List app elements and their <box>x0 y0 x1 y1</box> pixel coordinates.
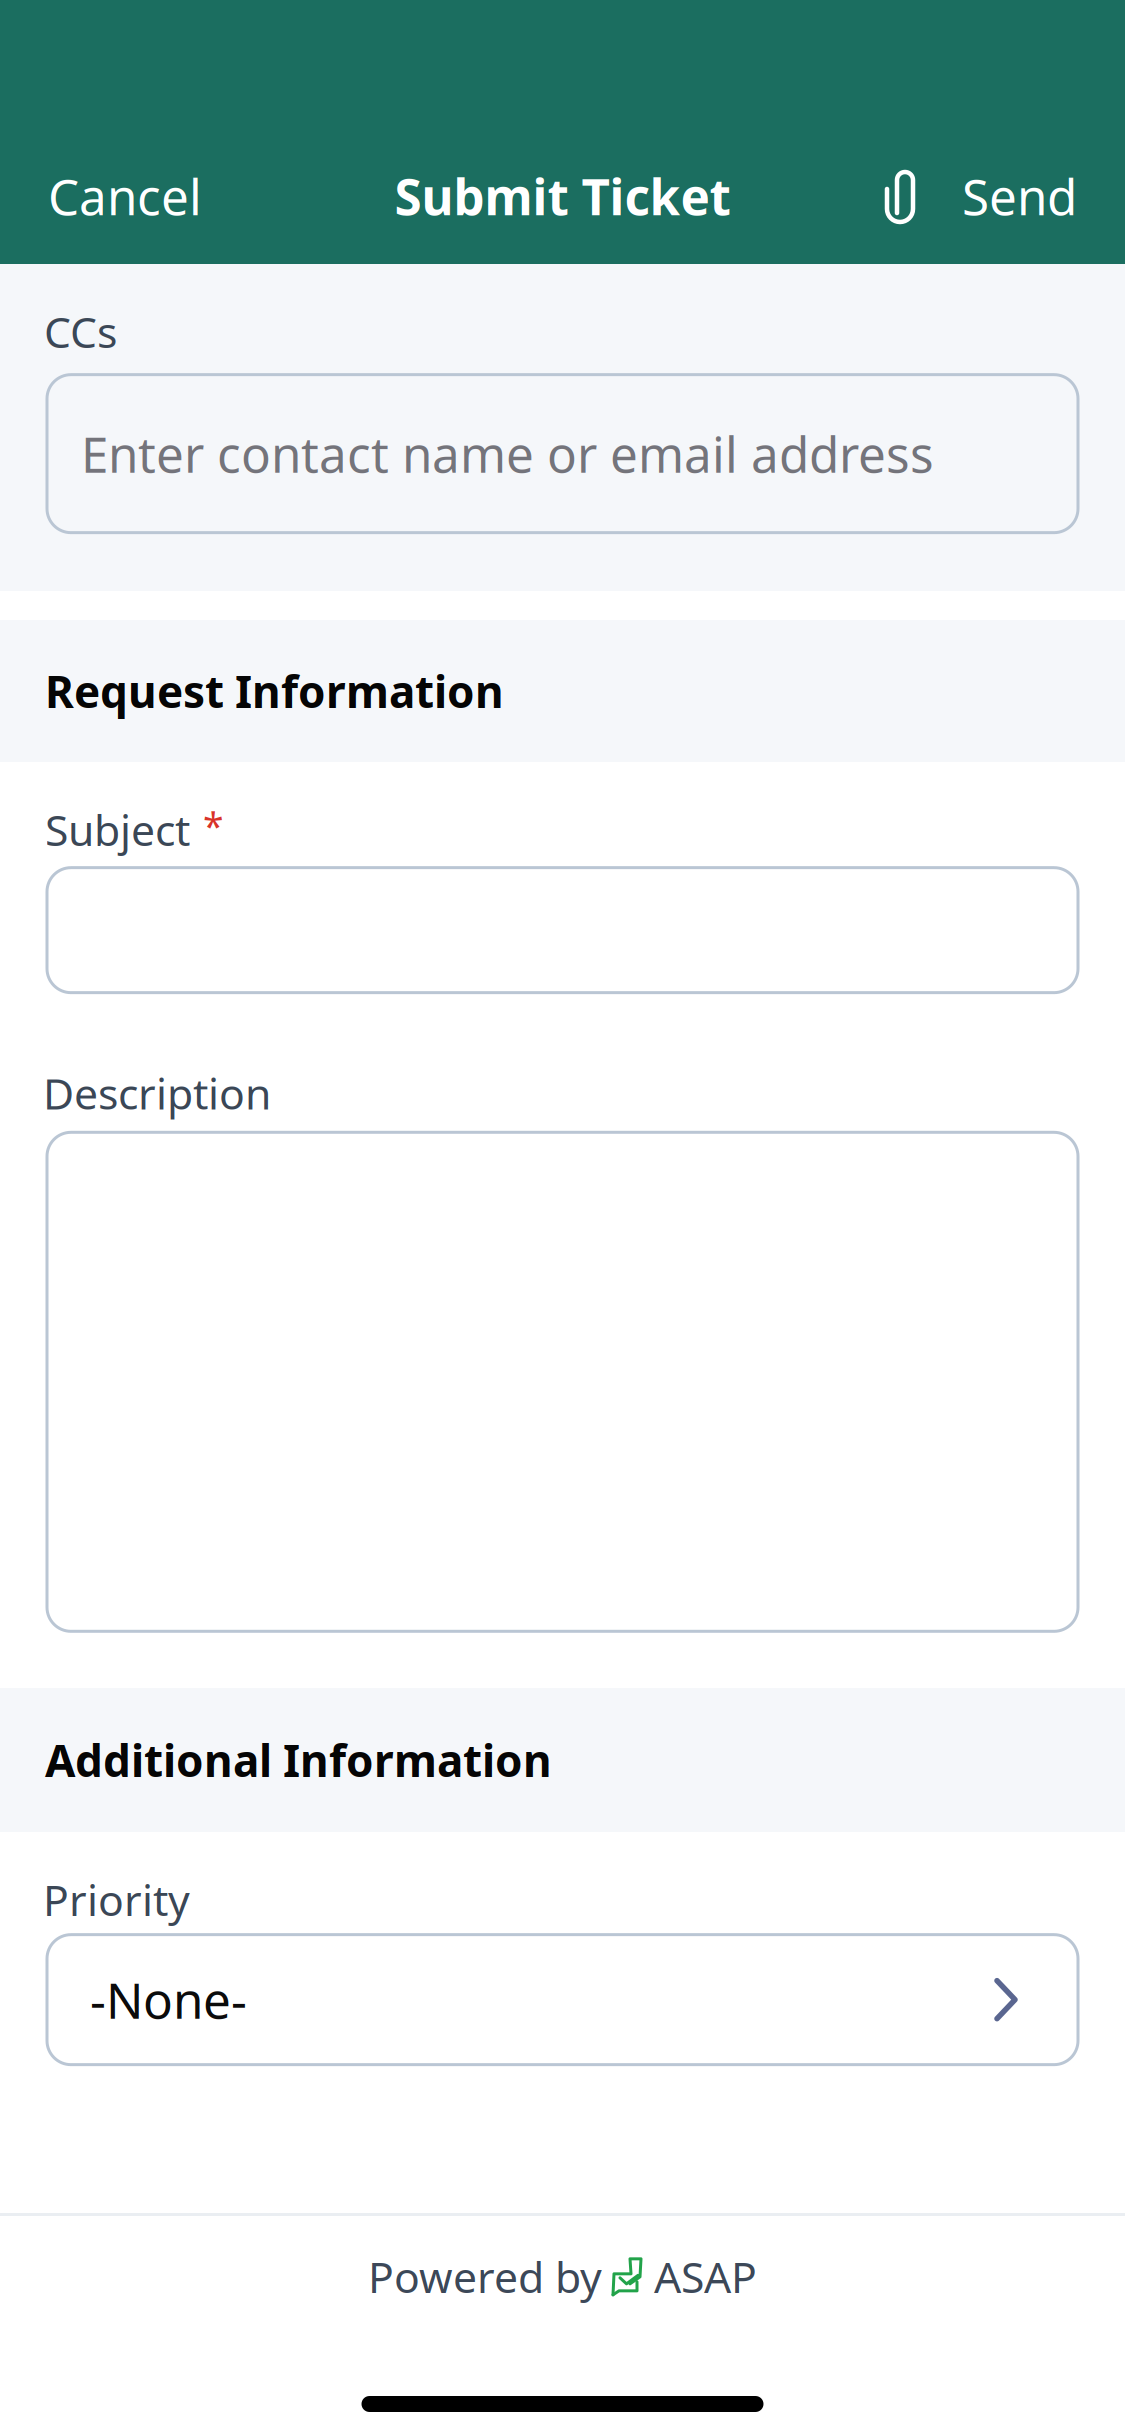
staticText: Subject <box>45 801 190 858</box>
button[interactable]: Cancel <box>0 148 250 244</box>
staticText: Priority <box>43 1871 190 1928</box>
staticText: * <box>203 801 224 851</box>
staticText: Enter contact name or email address <box>81 421 934 486</box>
staticText: CCs <box>44 303 117 360</box>
staticText: ASAP <box>654 2248 757 2305</box>
button[interactable]: CCs <box>0 375 1125 533</box>
button[interactable]: -None- <box>0 1935 1125 2065</box>
button[interactable]: Send <box>836 148 1125 244</box>
staticText: Request Information <box>45 662 504 720</box>
staticText: Powered by <box>368 2248 602 2305</box>
button[interactable]: Description <box>0 1132 1125 1631</box>
button[interactable]: Powered by <box>368 2248 757 2305</box>
staticText: Cancel <box>48 163 202 229</box>
button[interactable]: Subject <box>0 868 1125 993</box>
staticText: Submit Ticket <box>394 163 730 229</box>
staticText: Description <box>43 1065 271 1121</box>
staticText: -None- <box>90 1967 247 2032</box>
staticText: Send <box>962 163 1077 229</box>
staticText: Additional Information <box>45 1731 552 1789</box>
